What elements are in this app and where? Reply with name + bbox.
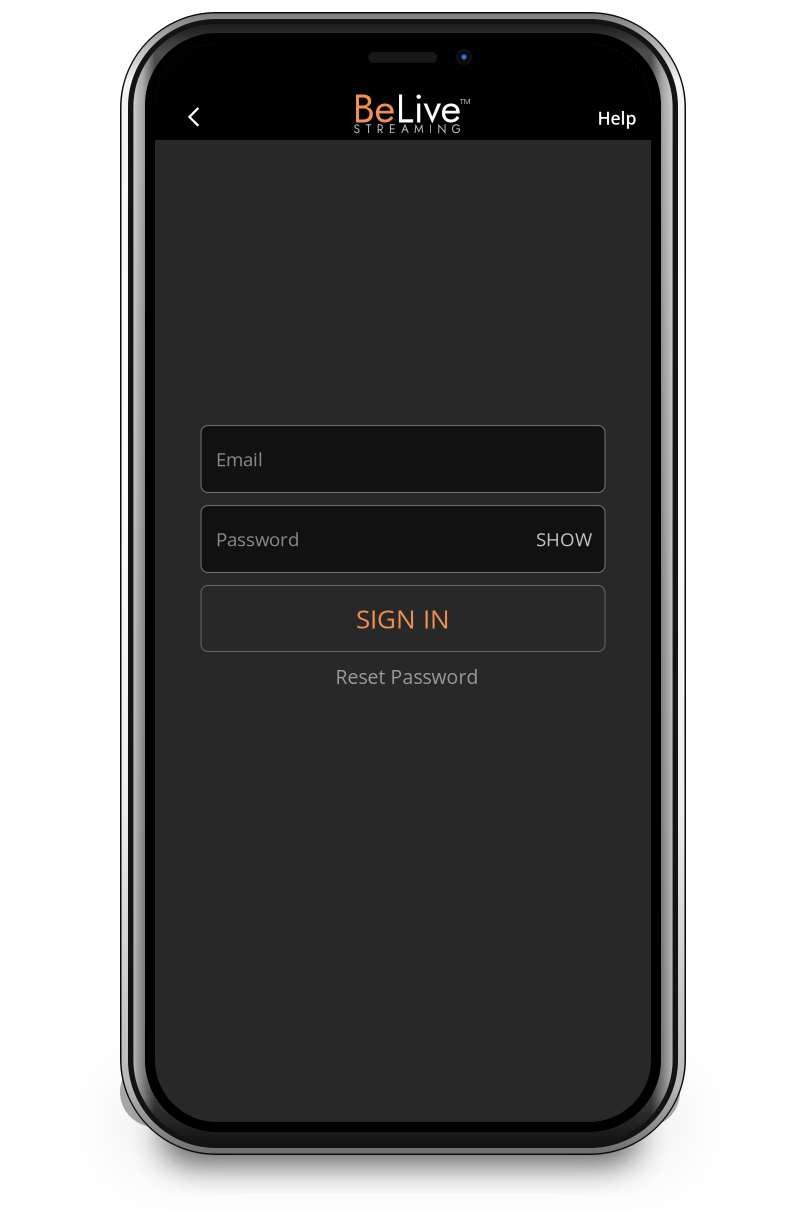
staticText: S xyxy=(354,120,361,138)
staticText: Live xyxy=(395,80,461,137)
staticText: Be xyxy=(352,80,395,137)
staticText: T xyxy=(366,120,372,138)
staticText: Reset Password xyxy=(335,663,478,690)
staticText: M xyxy=(414,120,424,138)
staticText: Password xyxy=(216,526,299,552)
staticText: TM xyxy=(459,95,470,106)
button[interactable]: SIGN IN xyxy=(201,585,605,651)
button[interactable]: Help xyxy=(584,95,650,141)
staticText: G xyxy=(451,120,460,138)
staticText: I xyxy=(429,120,432,138)
button[interactable]: Reset Password xyxy=(273,664,533,694)
staticText: N xyxy=(437,120,446,138)
staticText: R xyxy=(377,120,384,138)
staticText: Email xyxy=(216,446,263,472)
button[interactable]: Back xyxy=(168,94,214,140)
staticText: A xyxy=(401,120,409,138)
staticText: E xyxy=(389,120,396,138)
staticText: Help xyxy=(597,106,636,130)
staticText: SIGN IN xyxy=(356,601,450,636)
staticText: SHOW xyxy=(536,526,592,552)
button[interactable]: Password xyxy=(201,505,605,572)
button[interactable]: Email xyxy=(201,425,605,492)
